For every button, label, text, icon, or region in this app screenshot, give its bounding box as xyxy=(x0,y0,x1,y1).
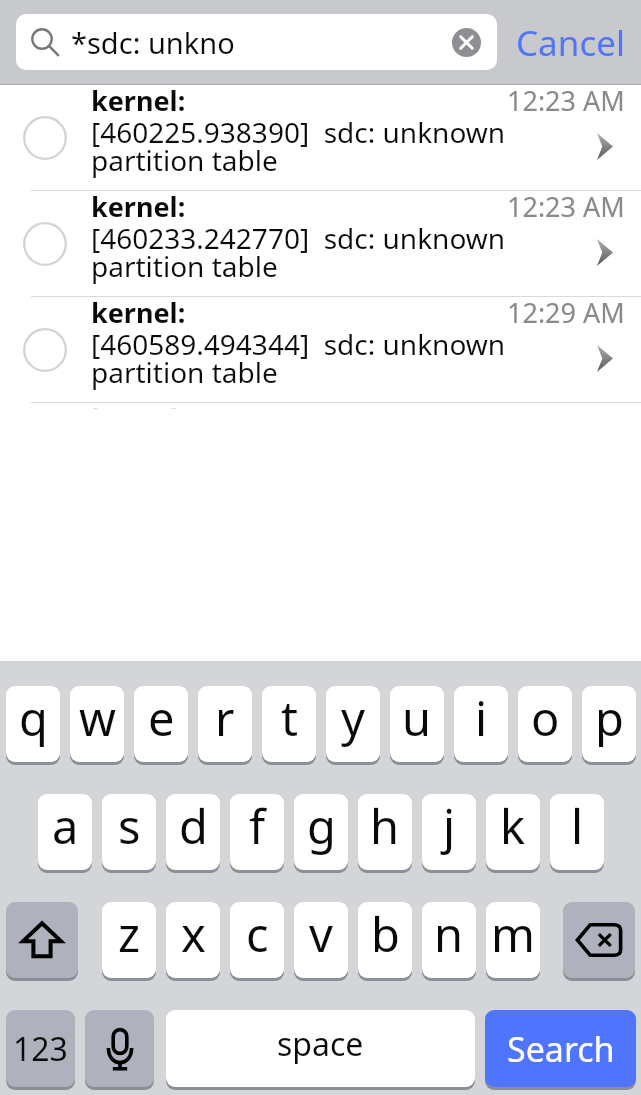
button[interactable]: kernel: xyxy=(0,191,641,296)
staticText: d xyxy=(179,794,208,858)
staticText: l xyxy=(571,794,584,858)
button[interactable]: d xyxy=(166,794,220,870)
staticText: 12:23 AM xyxy=(507,188,625,225)
staticText: a xyxy=(52,794,79,858)
staticText: kernel: xyxy=(91,82,186,119)
button[interactable]: i xyxy=(454,686,508,762)
staticText: t xyxy=(281,686,298,750)
staticText: kernel: xyxy=(91,403,186,409)
other: Shift xyxy=(19,917,65,963)
button[interactable]: o xyxy=(518,686,572,762)
staticText: kernel: xyxy=(91,294,186,331)
staticText: g xyxy=(307,794,336,858)
staticText: r xyxy=(215,686,235,750)
staticText: space xyxy=(277,1022,364,1066)
staticText: c xyxy=(246,902,269,966)
button[interactable]: x xyxy=(166,902,220,978)
staticText: b xyxy=(371,902,400,966)
staticText: [460589.494344] sdc: unknown partition t… xyxy=(91,325,511,391)
button[interactable]: m xyxy=(486,902,540,978)
button[interactable]: e xyxy=(134,686,188,762)
staticText: p xyxy=(595,686,624,750)
button[interactable]: p xyxy=(582,686,636,762)
staticText: [460233.242770] sdc: unknown partition t… xyxy=(91,219,511,285)
staticText: z xyxy=(118,902,141,966)
button[interactable]: Clear text xyxy=(443,19,489,65)
button[interactable]: y xyxy=(326,686,380,762)
button[interactable]: c xyxy=(230,902,284,978)
staticText: *sdc: unkno xyxy=(71,23,235,62)
staticText: n xyxy=(434,902,464,966)
staticText: q xyxy=(19,686,48,750)
button[interactable]: b xyxy=(358,902,412,978)
button[interactable]: Voice input xyxy=(85,1010,154,1087)
button[interactable]: kernel: xyxy=(0,297,641,402)
staticText: s xyxy=(118,794,141,858)
staticText: j xyxy=(443,794,456,858)
staticText: h xyxy=(370,794,400,858)
button[interactable]: t xyxy=(262,686,316,762)
button[interactable]: Shift xyxy=(6,902,78,978)
staticText: o xyxy=(531,686,560,750)
staticText: x xyxy=(181,902,206,966)
staticText: u xyxy=(402,686,432,750)
staticText: k xyxy=(500,794,526,858)
button[interactable]: g xyxy=(294,794,348,870)
button[interactable]: w xyxy=(70,686,124,762)
staticText: [460225.938390] sdc: unknown partition t… xyxy=(91,113,511,179)
other: Voice input xyxy=(103,1027,137,1071)
button[interactable]: v xyxy=(294,902,348,978)
button[interactable]: Backspace xyxy=(563,902,635,978)
button[interactable]: n xyxy=(422,902,476,978)
button[interactable]: s xyxy=(102,794,156,870)
other: Backspace xyxy=(575,923,623,957)
button[interactable]: a xyxy=(38,794,92,870)
staticText: kernel: xyxy=(91,188,186,225)
staticText: 12:23 AM xyxy=(507,82,625,119)
staticText: w xyxy=(79,686,116,750)
button[interactable]: 123 xyxy=(6,1010,75,1087)
button[interactable]: k xyxy=(486,794,540,870)
staticText: y xyxy=(341,686,365,750)
staticText: e xyxy=(148,686,175,750)
staticText: f xyxy=(249,794,266,858)
staticText: Cancel xyxy=(516,19,625,67)
button[interactable]: j xyxy=(422,794,476,870)
button[interactable]: z xyxy=(102,902,156,978)
button[interactable]: *sdc: unkno xyxy=(16,14,497,70)
button[interactable]: h xyxy=(358,794,412,870)
staticText: 123 xyxy=(13,1027,68,1071)
staticText: 12:29 AM xyxy=(507,294,625,331)
button[interactable]: Cancel xyxy=(502,0,638,85)
button[interactable]: l xyxy=(550,794,604,870)
staticText: m xyxy=(491,902,535,966)
staticText: Search xyxy=(507,1026,615,1072)
button[interactable]: r xyxy=(198,686,252,762)
button[interactable]: q xyxy=(6,686,60,762)
button[interactable]: kernel: xyxy=(0,85,641,190)
button[interactable]: space xyxy=(166,1010,475,1087)
button[interactable]: u xyxy=(390,686,444,762)
staticText: v xyxy=(309,902,333,966)
button[interactable]: Search xyxy=(485,1010,636,1087)
button[interactable]: f xyxy=(230,794,284,870)
staticText: i xyxy=(475,686,488,750)
